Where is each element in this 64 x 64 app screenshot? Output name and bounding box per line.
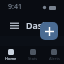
button[interactable]: Add	[40, 22, 58, 40]
staticText: Stats	[28, 56, 38, 61]
button[interactable]: Home	[0, 46, 22, 64]
button[interactable]: Menu	[6, 17, 22, 33]
staticText: Dashboard	[26, 19, 58, 31]
staticText: 9:41	[8, 2, 22, 12]
button[interactable]: Stats	[22, 46, 44, 64]
staticText: Home	[5, 56, 17, 61]
staticText: Alerts	[49, 56, 60, 61]
button[interactable]: Alerts	[44, 46, 64, 64]
